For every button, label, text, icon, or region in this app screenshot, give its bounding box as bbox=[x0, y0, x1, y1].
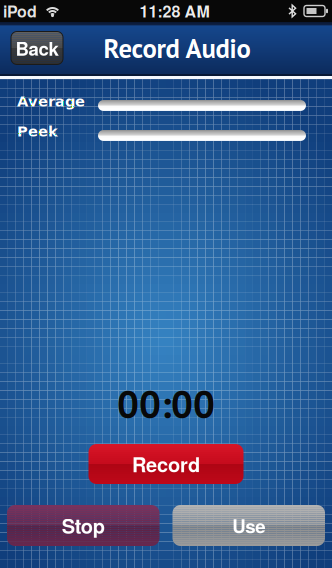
button[interactable]: Use bbox=[172, 505, 325, 546]
button[interactable]: Back bbox=[11, 31, 63, 64]
button[interactable]: Stop bbox=[7, 505, 159, 546]
staticText: Peek bbox=[17, 123, 58, 140]
staticText: 00:00 bbox=[117, 378, 215, 428]
staticText: Record bbox=[132, 450, 200, 478]
staticText: Record Audio bbox=[103, 31, 250, 65]
staticText: Use bbox=[232, 512, 265, 539]
staticText: iPod bbox=[3, 0, 37, 22]
staticText: 11:28 AM bbox=[139, 0, 209, 22]
staticText: Average bbox=[17, 93, 85, 110]
button[interactable]: Record bbox=[88, 444, 243, 484]
staticText: Back bbox=[15, 35, 58, 61]
staticText: Stop bbox=[62, 511, 105, 540]
